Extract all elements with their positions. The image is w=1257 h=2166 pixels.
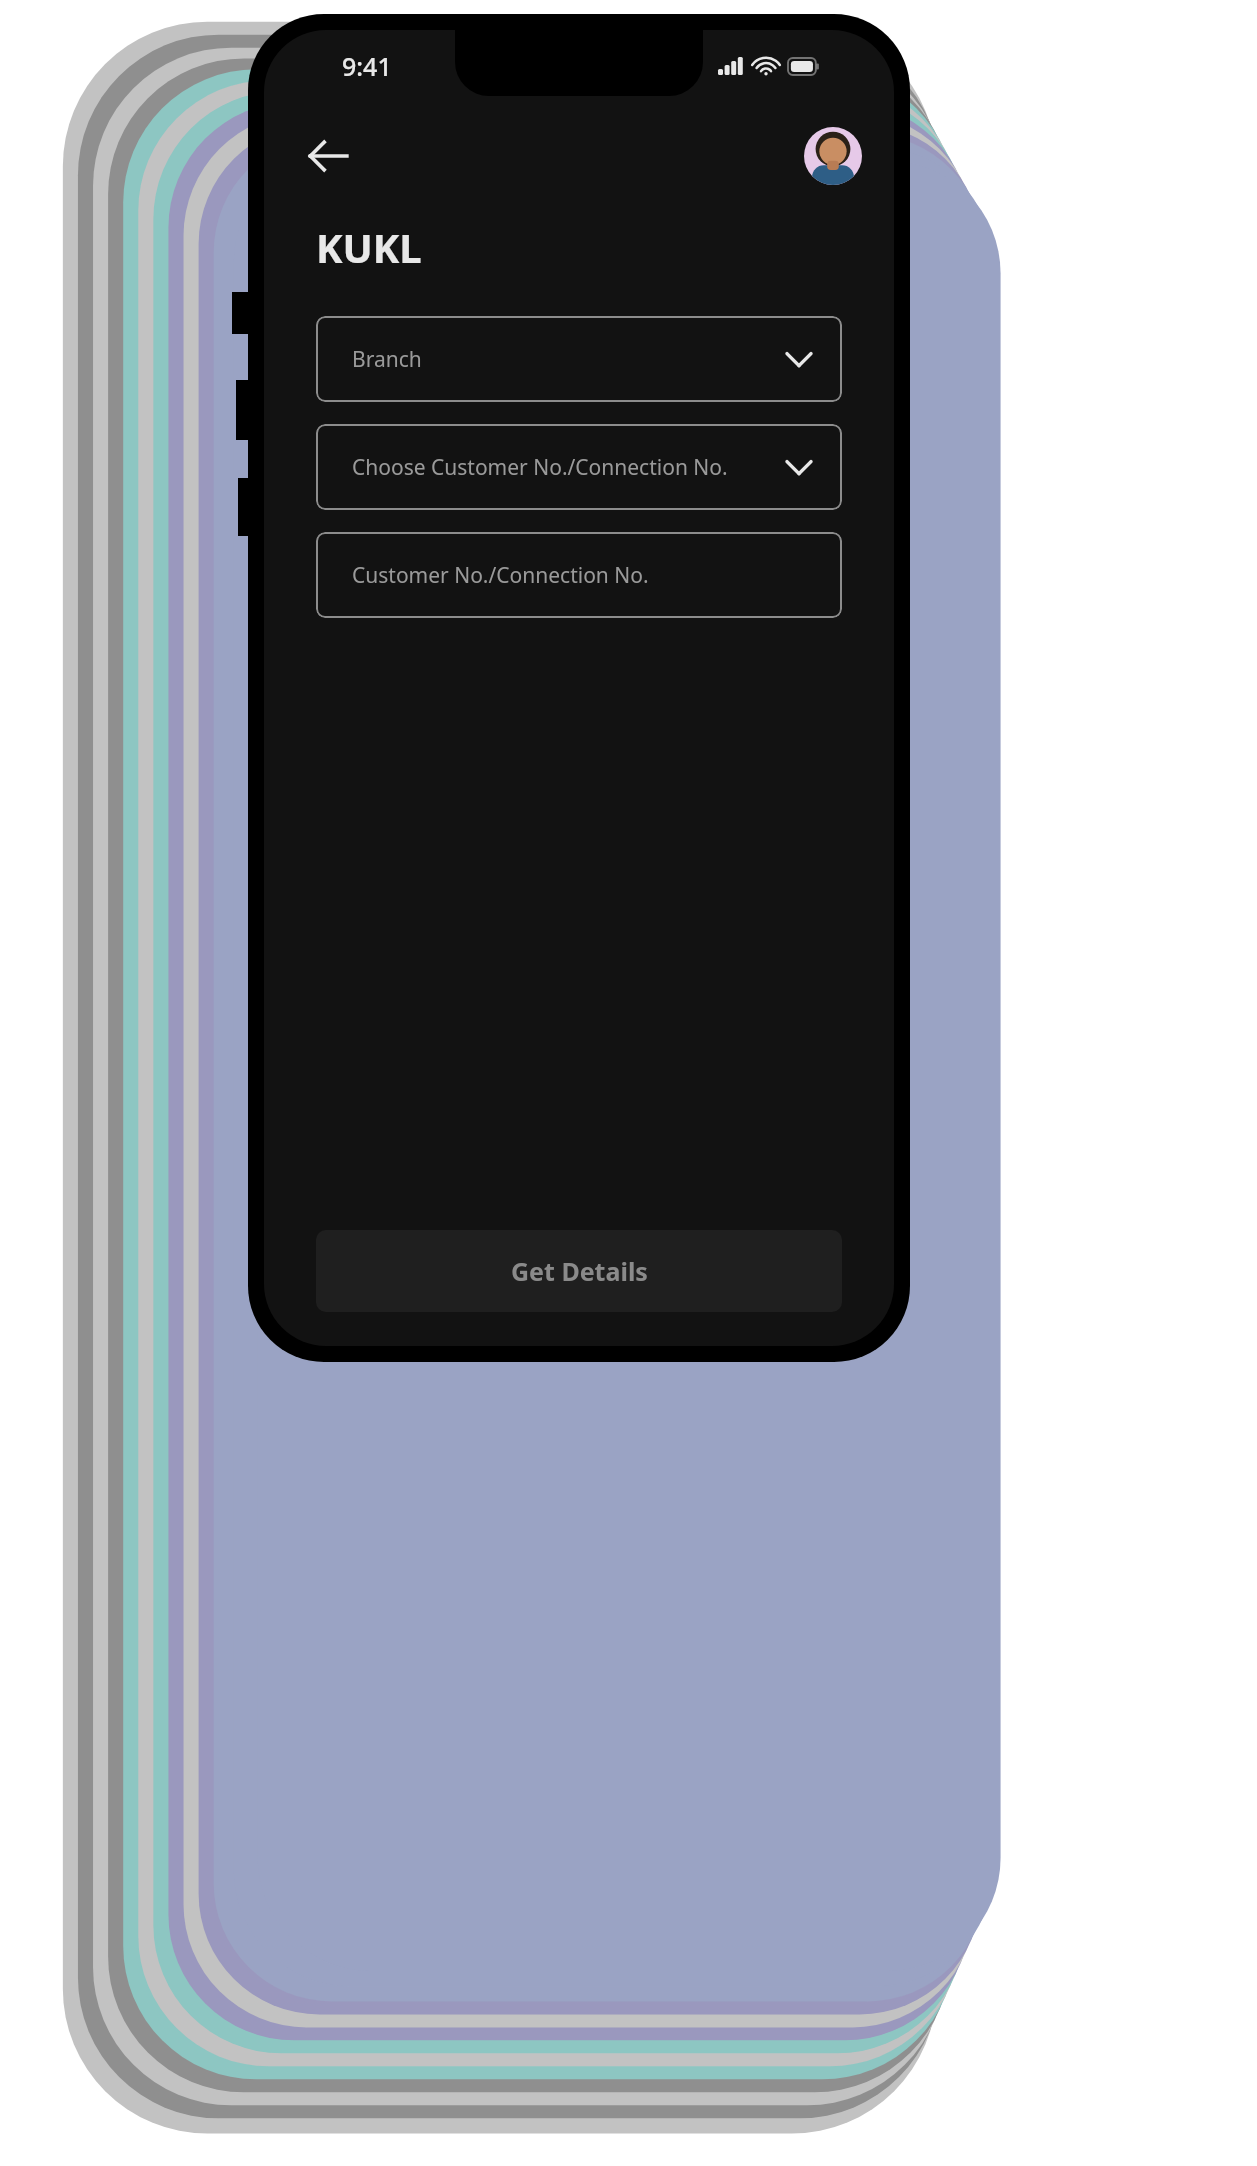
button[interactable]: Branch (316, 316, 842, 402)
staticText: Choose Customer No./Connection No. (352, 453, 728, 482)
staticText: KUKL (316, 220, 422, 274)
button[interactable]: Back (300, 128, 356, 184)
staticText: Customer No./Connection No. (352, 561, 649, 590)
staticText: Branch (352, 345, 422, 374)
staticText: Get Details (511, 1254, 648, 1288)
button[interactable]: Customer No./Connection No. (316, 532, 842, 618)
button[interactable]: Choose Customer No./Connection No. (316, 424, 842, 510)
staticText: 9:41 (342, 49, 392, 83)
button[interactable]: Get Details (316, 1230, 842, 1312)
button[interactable]: Profile (804, 127, 862, 185)
